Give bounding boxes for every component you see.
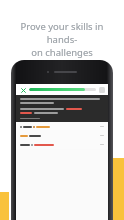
- staticText: Prove your skills in hands- on challenge…: [10, 20, 114, 59]
- button[interactable]: Profile: [99, 87, 105, 93]
- button[interactable]: Close: [19, 86, 27, 94]
